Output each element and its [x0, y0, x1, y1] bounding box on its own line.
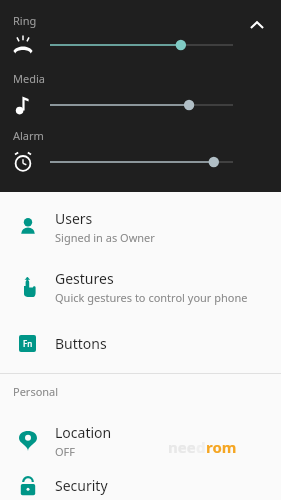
- staticText: Users: [55, 209, 93, 228]
- button[interactable]: Location: [0, 411, 281, 471]
- button[interactable]: Security: [0, 471, 281, 500]
- staticText: Security: [55, 476, 108, 495]
- button[interactable]: Alarm: [10, 149, 36, 175]
- staticText: Buttons: [55, 334, 107, 353]
- staticText: OFF: [55, 444, 76, 459]
- button[interactable]: Fn: [0, 317, 281, 369]
- button[interactable]: Gestures: [0, 257, 281, 317]
- staticText: Signed in as Owner: [55, 230, 155, 245]
- button[interactable]: Ring: [10, 32, 36, 58]
- staticText: Quick gestures to control your phone: [55, 290, 248, 305]
- button[interactable]: Users: [0, 197, 281, 257]
- staticText: Fn: [23, 338, 33, 349]
- staticText: Gestures: [55, 269, 114, 288]
- staticText: Alarm: [13, 128, 44, 143]
- button[interactable]: Collapse: [237, 6, 277, 46]
- staticText: Personal: [13, 384, 59, 399]
- button[interactable]: Media volume: [45, 91, 236, 119]
- staticText: Media: [13, 71, 45, 86]
- button[interactable]: Media: [10, 92, 36, 118]
- staticText: Location: [55, 423, 112, 442]
- staticText: rom: [206, 437, 237, 457]
- staticText: nee: [168, 437, 196, 457]
- button[interactable]: Ring volume: [45, 31, 236, 59]
- staticText: Ring: [13, 13, 37, 28]
- staticText: d: [196, 437, 206, 457]
- button[interactable]: Alarm volume: [45, 148, 236, 176]
